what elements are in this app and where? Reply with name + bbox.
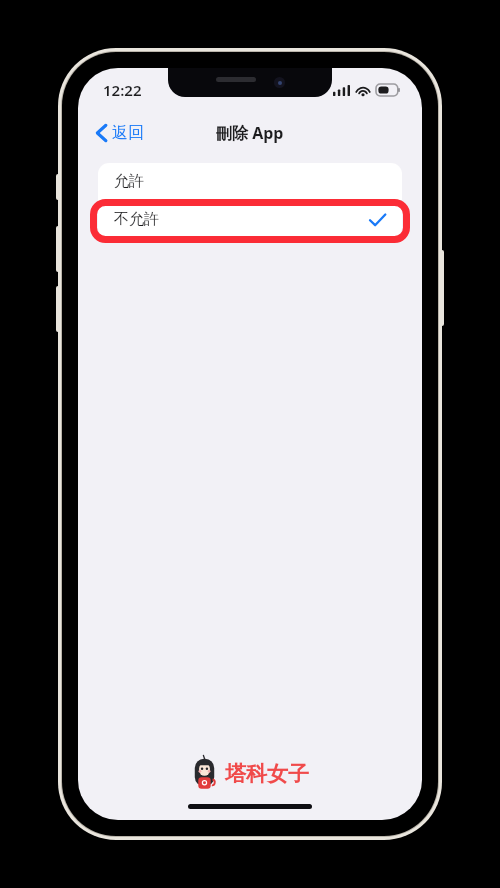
staticText: 12:22: [103, 80, 142, 100]
button[interactable]: 返回: [90, 118, 150, 148]
staticText: 刪除 App: [216, 122, 284, 144]
staticText: 不允許: [114, 210, 159, 229]
staticText: 允許: [114, 172, 144, 191]
other: Selected: [369, 213, 386, 227]
staticText: 返回: [112, 123, 144, 143]
staticText: 塔科女子: [225, 761, 309, 787]
button[interactable]: 允許: [98, 163, 402, 200]
button[interactable]: 不允許: [98, 201, 402, 238]
